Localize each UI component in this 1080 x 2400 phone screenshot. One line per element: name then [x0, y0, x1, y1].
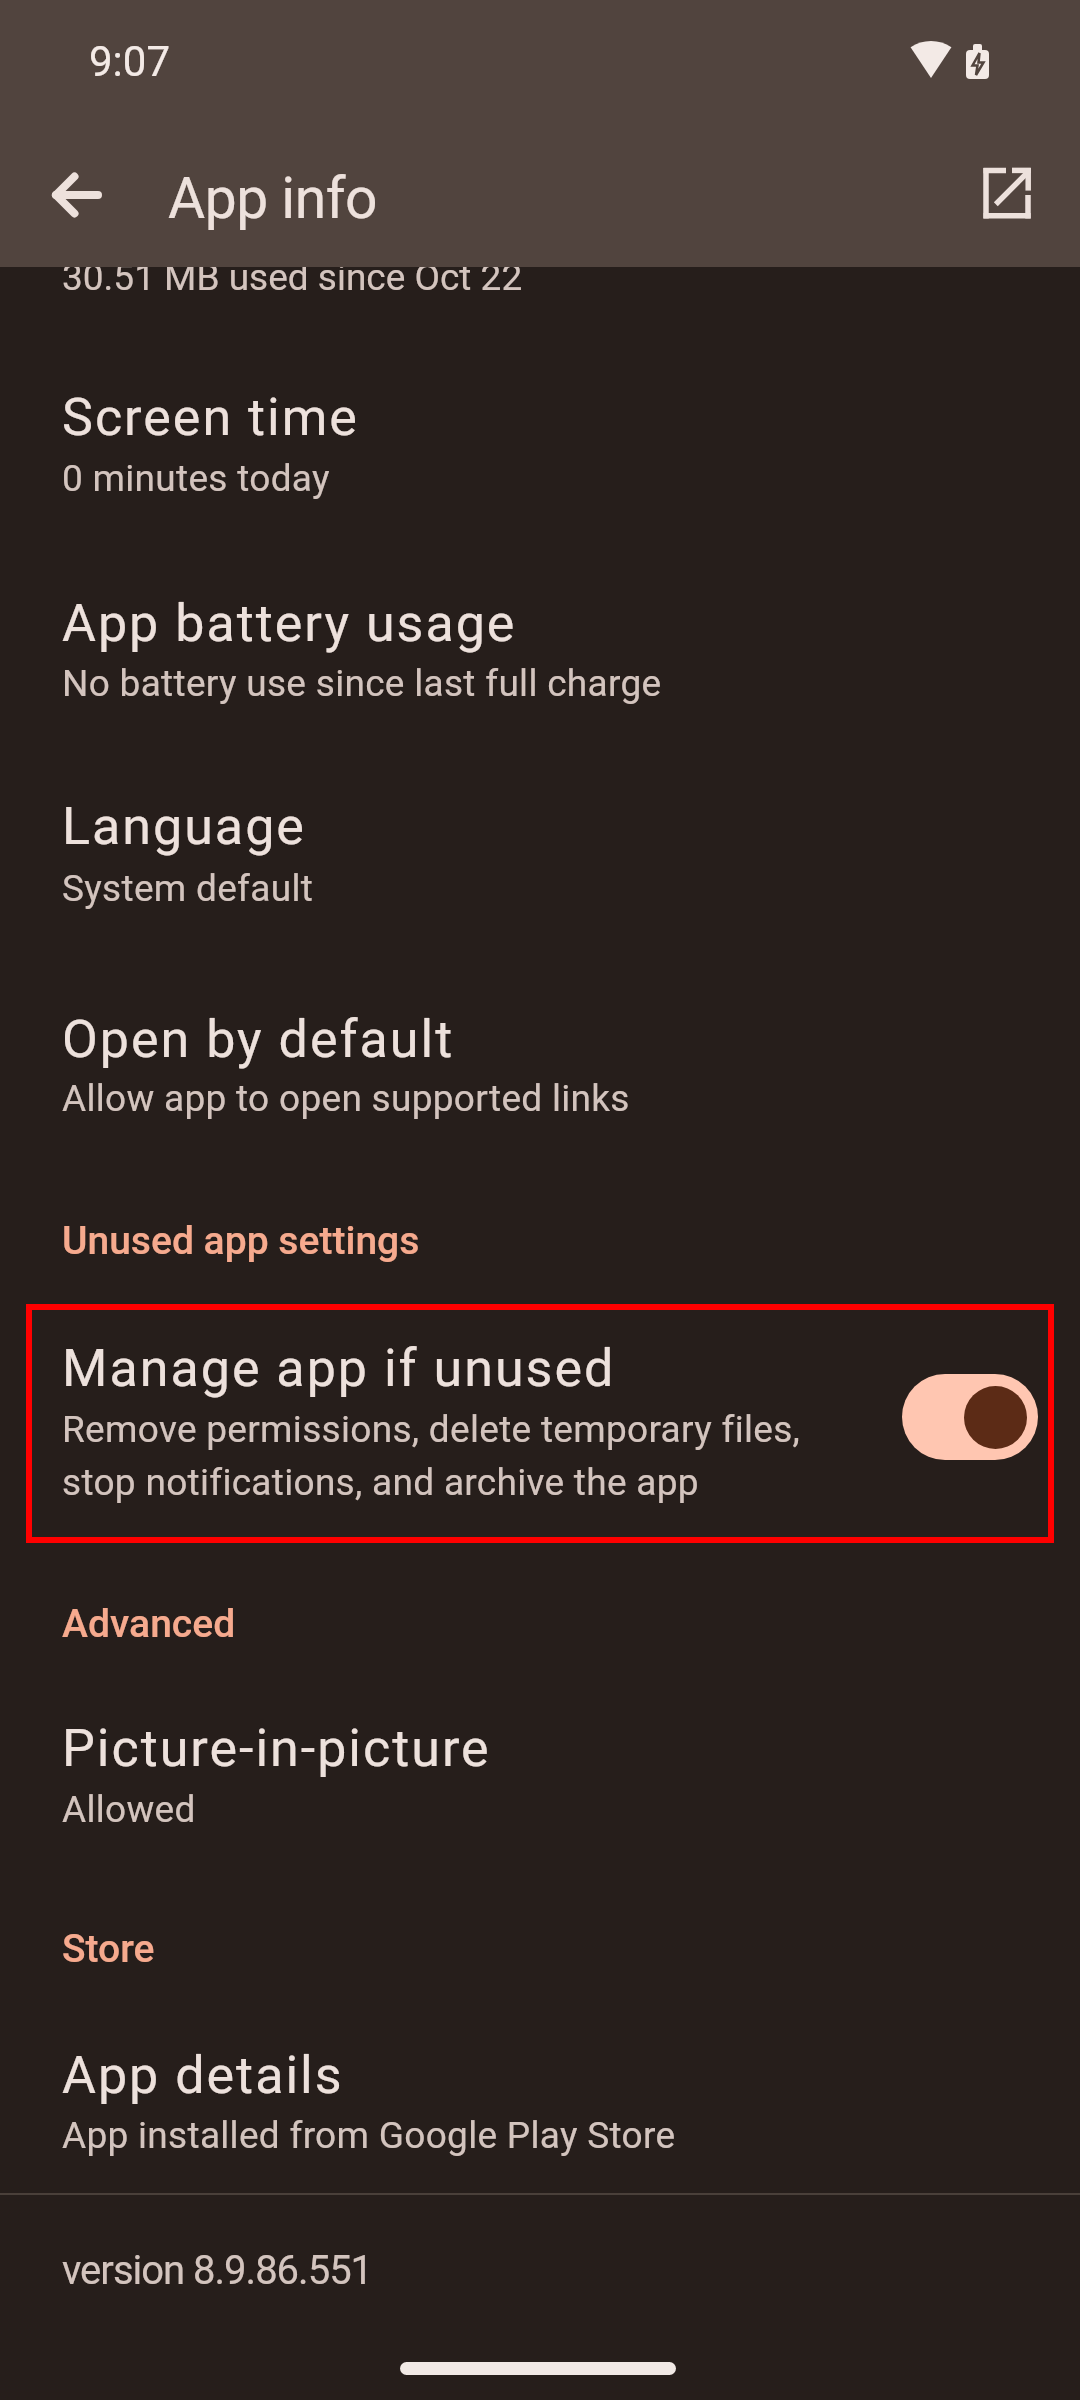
- staticText: stop notifications, and archive the app: [62, 1461, 699, 1504]
- staticText: Manage app if unused: [62, 1338, 616, 1399]
- button[interactable]: Picture-in-picture: [0, 1662, 1080, 1868]
- button[interactable]: Screen time: [0, 342, 1080, 548]
- button[interactable]: Manage app if unused: [0, 1304, 1080, 1543]
- button[interactable]: [36, 155, 120, 239]
- staticText: version 8.9.86.551: [62, 2247, 373, 2294]
- staticText: 0 minutes today: [62, 457, 330, 500]
- button[interactable]: Open by default: [0, 962, 1080, 1168]
- staticText: Allow app to open supported links: [62, 1077, 630, 1120]
- button[interactable]: [975, 160, 1039, 224]
- staticText: System default: [62, 867, 314, 910]
- button[interactable]: App battery usage: [0, 547, 1080, 753]
- staticText: App battery usage: [62, 593, 517, 654]
- staticText: Picture-in-picture: [62, 1718, 491, 1779]
- staticText: App details: [62, 2045, 344, 2106]
- staticText: App installed from Google Play Store: [62, 2114, 676, 2157]
- staticText: Open by default: [62, 1009, 455, 1070]
- staticText: Remove permissions, delete temporary fil…: [62, 1408, 801, 1451]
- staticText: Unused app settings: [62, 1218, 420, 1264]
- staticText: Screen time: [62, 387, 359, 448]
- staticText: App info: [168, 165, 377, 232]
- staticText: No battery use since last full charge: [62, 662, 662, 705]
- staticText: Language: [62, 796, 306, 857]
- staticText: Store: [62, 1926, 155, 1972]
- staticText: 9:07: [89, 37, 170, 86]
- staticText: Allowed: [62, 1788, 196, 1831]
- staticText: 30.51 MB used since Oct 22: [62, 256, 523, 299]
- staticText: Advanced: [62, 1601, 236, 1647]
- button[interactable]: [902, 1374, 1038, 1460]
- button[interactable]: Language: [0, 752, 1080, 958]
- button[interactable]: App details: [0, 1988, 1080, 2194]
